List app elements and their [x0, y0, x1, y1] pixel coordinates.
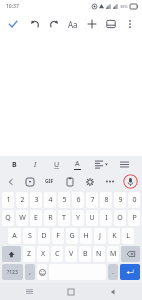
- button[interactable]: R: [44, 210, 56, 226]
- button[interactable]: Back: [4, 175, 17, 188]
- staticText: 4: [48, 195, 53, 205]
- button[interactable]: 1: [2, 192, 14, 208]
- staticText: A: [12, 231, 17, 241]
- staticText: 10:37: [6, 3, 19, 10]
- button[interactable]: .: [108, 264, 118, 280]
- staticText: O: [117, 213, 123, 223]
- button[interactable]: GIF: [42, 175, 56, 188]
- staticText: C: [55, 249, 60, 259]
- button[interactable]: E: [30, 210, 42, 226]
- staticText: 7: [90, 195, 95, 205]
- button[interactable]: Backspace: [121, 246, 140, 262]
- button[interactable]: V: [65, 246, 77, 262]
- button[interactable]: Voice input: [123, 174, 138, 189]
- button[interactable]: Y: [72, 210, 84, 226]
- staticText: 5: [62, 195, 67, 205]
- button[interactable]: 6: [72, 192, 84, 208]
- button[interactable]: Back: [100, 283, 126, 300]
- staticText: G: [69, 231, 75, 241]
- button[interactable]: 7: [86, 192, 98, 208]
- button[interactable]: U: [50, 158, 63, 171]
- staticText: J: [99, 231, 101, 241]
- button[interactable]: M: [107, 246, 119, 262]
- button[interactable]: Alignment: [94, 158, 109, 171]
- staticText: K: [112, 231, 117, 241]
- staticText: T: [62, 213, 66, 223]
- button[interactable]: ,: [25, 264, 35, 280]
- button[interactable]: Add: [83, 12, 101, 36]
- button[interactable]: Insert image: [102, 12, 120, 36]
- button[interactable]: 2: [16, 192, 28, 208]
- button[interactable]: 9: [114, 192, 126, 208]
- button[interactable]: A: [8, 228, 21, 244]
- button[interactable]: C: [51, 246, 63, 262]
- staticText: Q: [5, 213, 11, 223]
- button[interactable]: 0: [128, 192, 140, 208]
- button[interactable]: 8: [100, 192, 112, 208]
- staticText: D: [41, 231, 47, 241]
- button[interactable]: 5: [58, 192, 70, 208]
- button[interactable]: U: [86, 210, 98, 226]
- button[interactable]: Aa: [64, 12, 82, 36]
- button[interactable]: G: [66, 228, 78, 244]
- staticText: E: [34, 213, 38, 223]
- staticText: I: [105, 213, 108, 223]
- staticText: 38%: [120, 4, 128, 9]
- staticText: R: [48, 213, 53, 223]
- staticText: 8: [104, 195, 109, 205]
- button[interactable]: I: [29, 158, 42, 171]
- staticText: 1: [6, 195, 11, 205]
- button[interactable]: B: [8, 158, 21, 171]
- button[interactable]: D: [38, 228, 50, 244]
- button[interactable]: I: [100, 210, 112, 226]
- button[interactable]: L: [122, 228, 134, 244]
- staticText: F: [56, 231, 60, 241]
- button[interactable]: 3: [30, 192, 42, 208]
- button[interactable]: K: [108, 228, 120, 244]
- button[interactable]: Z: [23, 246, 35, 262]
- button[interactable]: Shift: [2, 246, 21, 262]
- staticText: U: [54, 160, 60, 170]
- staticText: L: [126, 231, 130, 241]
- button[interactable]: Recents: [16, 283, 42, 300]
- button[interactable]: F: [52, 228, 64, 244]
- button[interactable]: Stickers: [23, 175, 36, 188]
- button[interactable]: S: [23, 228, 36, 244]
- button[interactable]: More options: [121, 12, 139, 36]
- button[interactable]: Q: [2, 210, 14, 226]
- button[interactable]: O: [114, 210, 126, 226]
- staticText: Aa: [68, 19, 78, 30]
- button[interactable]: Clipboard: [63, 175, 76, 188]
- button[interactable]: Undo: [26, 12, 44, 36]
- staticText: N: [96, 249, 102, 259]
- staticText: 3: [34, 195, 39, 205]
- button[interactable]: Redo: [45, 12, 63, 36]
- button[interactable]: J: [94, 228, 106, 244]
- staticText: ,: [29, 267, 31, 277]
- button[interactable]: N: [93, 246, 105, 262]
- button[interactable]: Done: [0, 12, 26, 36]
- staticText: Z: [27, 249, 32, 259]
- button[interactable]: P: [128, 210, 140, 226]
- button[interactable]: H: [80, 228, 92, 244]
- button[interactable]: B: [79, 246, 91, 262]
- button[interactable]: More: [103, 175, 116, 188]
- button[interactable]: T: [58, 210, 70, 226]
- button[interactable]: X: [37, 246, 49, 262]
- staticText: B: [83, 249, 88, 259]
- staticText: X: [41, 249, 46, 259]
- button[interactable]: Settings: [83, 175, 96, 188]
- button[interactable]: Text color: [71, 158, 84, 171]
- button[interactable]: List: [118, 158, 131, 171]
- button[interactable]: Emoji: [37, 264, 47, 280]
- staticText: 2: [20, 195, 25, 205]
- button[interactable]: Enter: [120, 264, 140, 280]
- button[interactable]: W: [16, 210, 28, 226]
- button[interactable]: ?123: [2, 264, 23, 280]
- staticText: 0: [132, 195, 137, 205]
- staticText: W: [19, 213, 26, 223]
- button[interactable]: Home: [58, 283, 84, 300]
- button[interactable]: 4: [44, 192, 56, 208]
- staticText: U: [89, 213, 95, 223]
